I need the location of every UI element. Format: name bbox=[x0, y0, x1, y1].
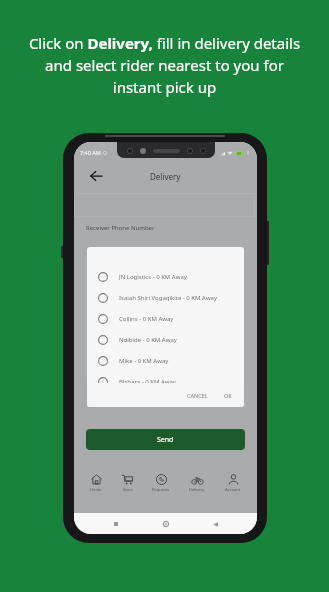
button[interactable]: Recents bbox=[109, 517, 123, 531]
button[interactable]: Send bbox=[86, 429, 245, 450]
staticText: Receiver Phone Number bbox=[86, 224, 155, 232]
button[interactable]: Home bbox=[87, 472, 105, 494]
button[interactable]: Isaiah Shiri Vogaqikite - 0 KM Away bbox=[87, 287, 244, 308]
button[interactable]: Collins - 0 KM Away bbox=[87, 308, 244, 329]
staticText: Isaiah Shiri Vogaqikite - 0 KM Away bbox=[119, 294, 218, 302]
button[interactable]: Ndibide - 0 KM Away bbox=[87, 329, 244, 350]
button[interactable]: Bishara - 0 KM Away bbox=[87, 371, 244, 383]
button[interactable]: Back bbox=[88, 168, 104, 184]
staticText: CANCEL bbox=[187, 392, 208, 399]
button[interactable]: CANCEL bbox=[183, 389, 212, 402]
staticText: Ndibide - 0 KM Away bbox=[119, 336, 177, 344]
button[interactable]: Delivery bbox=[186, 472, 208, 494]
staticText: OK bbox=[224, 392, 232, 399]
button[interactable]: Mike - 0 KM Away bbox=[87, 350, 244, 371]
staticText: Send bbox=[157, 435, 174, 445]
staticText: Account bbox=[225, 487, 241, 492]
staticText: Store bbox=[123, 487, 133, 492]
staticText: 7:40 AM bbox=[80, 149, 101, 156]
button[interactable]: Home bbox=[159, 517, 173, 531]
staticText: Requests bbox=[152, 487, 170, 492]
button[interactable]: Account bbox=[222, 472, 244, 494]
staticText: Delivery bbox=[150, 171, 181, 182]
staticText: Click on Delivery, fill in delivery deta… bbox=[0, 33, 329, 98]
button[interactable]: JN Logistics - 0 KM Away bbox=[87, 266, 244, 287]
staticText: Collins - 0 KM Away bbox=[119, 315, 174, 323]
staticText: Mike - 0 KM Away bbox=[119, 357, 169, 365]
staticText: 80 bbox=[237, 151, 242, 156]
staticText: Bishara - 0 KM Away bbox=[119, 378, 176, 383]
button[interactable]: Back bbox=[208, 517, 222, 531]
button[interactable]: Store bbox=[119, 472, 136, 494]
staticText: JN Logistics - 0 KM Away bbox=[119, 273, 187, 281]
staticText: Delivery bbox=[189, 487, 205, 492]
staticText: Home bbox=[90, 487, 102, 492]
button[interactable]: Requests bbox=[149, 472, 173, 494]
button[interactable]: OK bbox=[220, 389, 236, 402]
